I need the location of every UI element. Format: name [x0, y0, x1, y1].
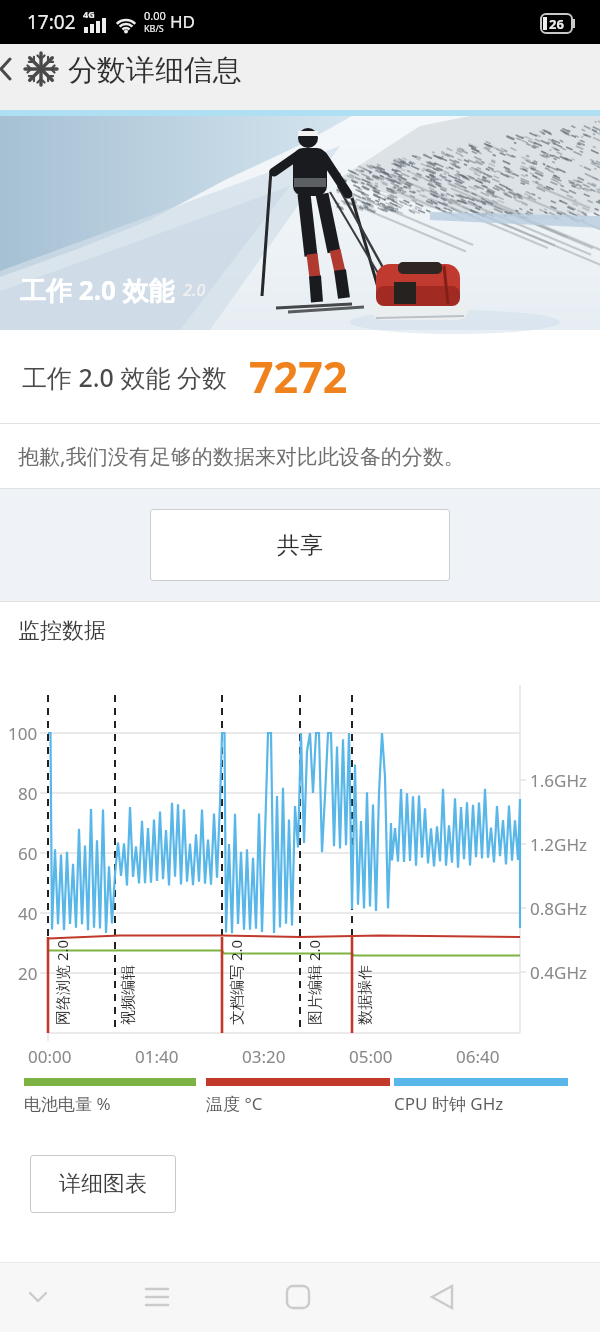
staticText: 详细图表 [59, 1170, 147, 1198]
staticText: 抱歉,我们没有足够的数据来对比此设备的分数。 [18, 442, 465, 471]
button[interactable] [450, 1262, 600, 1332]
button[interactable]: 详细图表 [30, 1155, 176, 1213]
staticText: 共享 [277, 531, 323, 560]
button[interactable]: 分数详细信息 [0, 44, 600, 110]
button[interactable] [150, 1262, 300, 1332]
staticText: 工作 2.0 效能 [20, 272, 175, 308]
button[interactable] [0, 1262, 150, 1332]
button[interactable] [300, 1262, 450, 1332]
staticText: 2.0 [175, 279, 206, 301]
button[interactable]: 共享 [150, 509, 450, 581]
staticText: 分数详细信息 [68, 52, 242, 89]
staticText: 工作 2.0 效能 分数 [22, 360, 227, 394]
staticText: 监控数据 [18, 617, 106, 645]
staticText: 7272 [249, 347, 348, 406]
